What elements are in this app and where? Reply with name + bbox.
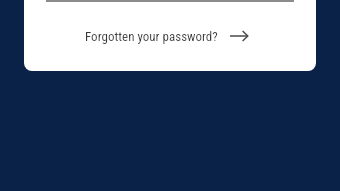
button[interactable]: Forgotten your password? <box>85 29 249 44</box>
staticText: Forgotten your password? <box>85 29 218 44</box>
